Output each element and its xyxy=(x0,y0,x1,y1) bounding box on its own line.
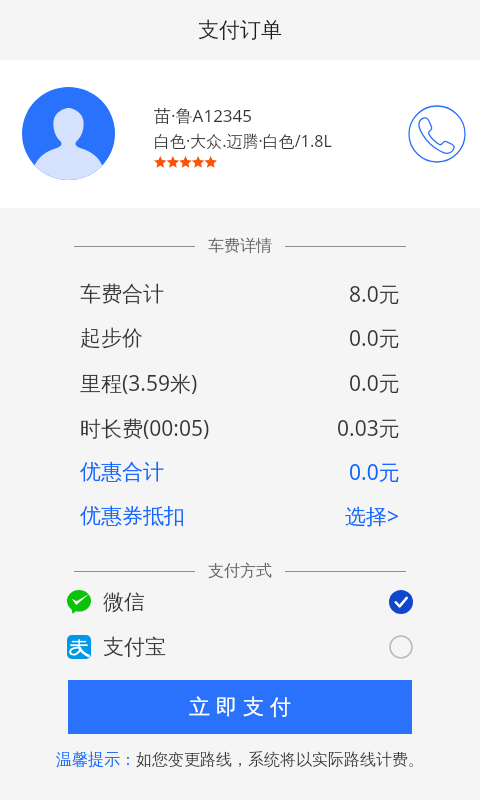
staticText: 支付宝 xyxy=(103,634,166,660)
staticText: 优惠券抵扣 xyxy=(80,503,185,529)
staticText: 8.0元 xyxy=(349,280,400,309)
button[interactable]: 优惠券抵扣 xyxy=(0,494,480,538)
button[interactable]: 微信 xyxy=(0,581,480,622)
button[interactable]: 立即支付 xyxy=(68,680,412,734)
staticText: 车费详情 xyxy=(208,236,272,256)
button[interactable]: 里程(3.59米) xyxy=(0,361,480,405)
staticText: 里程(3.59米) xyxy=(80,369,198,398)
button[interactable]: 车费合计 xyxy=(0,272,480,316)
staticText: 温馨提示：如您变更路线，系统将以实际路线计费。 xyxy=(56,750,424,770)
staticText: 时长费(00:05) xyxy=(80,414,210,443)
button[interactable]: 支付宝 xyxy=(0,626,480,667)
staticText: 白色·大众.迈腾·白色/1.8L xyxy=(154,130,332,152)
staticText: 苗·鲁A12345 xyxy=(154,104,253,127)
staticText: 支付订单 xyxy=(198,17,282,43)
staticText: 0.03元 xyxy=(337,414,400,443)
staticText: 选择> xyxy=(345,502,400,531)
staticText: 起步价 xyxy=(80,325,143,351)
staticText: 0.0元 xyxy=(349,324,400,353)
staticText: 0.0元 xyxy=(349,369,400,398)
button[interactable]: 起步价 xyxy=(0,316,480,360)
button[interactable]: 时长费(00:05) xyxy=(0,406,480,450)
staticText: 立即支付 xyxy=(186,694,294,720)
staticText: 优惠合计 xyxy=(80,459,164,485)
staticText: 0.0元 xyxy=(349,458,400,487)
staticText: 微信 xyxy=(103,589,145,615)
staticText: 支付方式 xyxy=(208,561,272,581)
button[interactable]: 优惠合计 xyxy=(0,450,480,494)
button[interactable]: Call driver xyxy=(408,105,466,163)
staticText: 车费合计 xyxy=(80,281,164,307)
